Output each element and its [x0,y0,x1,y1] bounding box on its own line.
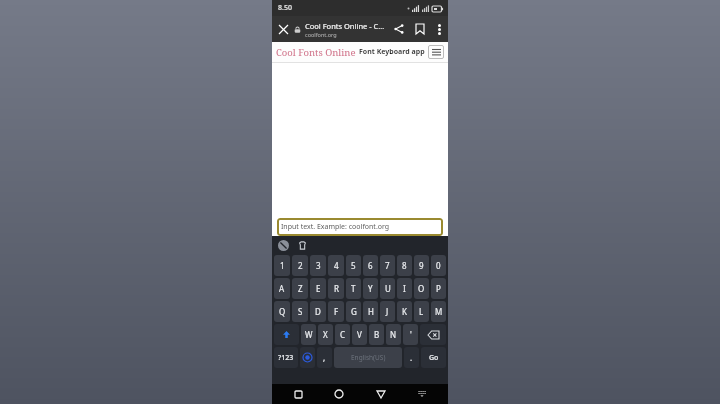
button[interactable]: K [397,301,412,322]
staticText: H [368,306,374,317]
staticText: P [436,283,441,294]
staticText: K [402,306,407,317]
staticText: G [351,306,357,317]
button[interactable]: 3 [310,255,326,276]
staticText: ' [410,329,412,340]
staticText: A [279,283,285,294]
button[interactable]: English(US) [334,347,402,368]
button[interactable]: P [431,278,446,299]
staticText: 6 [368,260,373,271]
button[interactable]: Share [388,16,410,42]
button[interactable]: H [363,301,378,322]
staticText: C [340,329,346,340]
staticText: 2 [298,260,303,271]
button[interactable]: 5 [346,255,361,276]
button[interactable]: Recent apps [283,384,313,404]
button[interactable]: Keyboard options [278,240,289,251]
button[interactable]: 0 [431,255,446,276]
button[interactable]: L [414,301,429,322]
button[interactable]: 4 [328,255,344,276]
staticText: J [386,306,389,317]
button[interactable]: J [380,301,395,322]
staticText: E [316,283,321,294]
button[interactable]: 2 [292,255,308,276]
button[interactable]: Input text. Example: coolfont.org [277,218,443,236]
button[interactable]: 6 [363,255,378,276]
staticText: , [323,352,326,363]
button[interactable]: A [274,278,290,299]
button[interactable]: Home [324,384,354,404]
button[interactable]: N [386,324,401,345]
button[interactable]: Hide keyboard [407,384,437,404]
staticText: Z [298,283,303,294]
button[interactable]: Themes [297,240,308,251]
button[interactable]: Key [274,347,298,368]
button[interactable]: X [318,324,333,345]
button[interactable]: 1 [274,255,290,276]
button[interactable]: Back [366,384,396,404]
staticText: U [385,283,391,294]
staticText: Y [368,283,373,294]
button[interactable]: Z [292,278,308,299]
button[interactable]: 7 [380,255,395,276]
button[interactable]: Y [363,278,378,299]
staticText: R [334,283,339,294]
staticText: 5 [351,260,356,271]
staticText: B [374,329,380,340]
button[interactable]: W [301,324,316,345]
staticText: I [403,283,406,294]
staticText: Cool Fonts Online - C… [305,21,385,31]
button[interactable]: Key [420,324,446,345]
button[interactable]: D [310,301,326,322]
staticText: D [315,306,321,317]
staticText: 0 [436,260,441,271]
staticText: X [323,329,328,340]
staticText: O [418,283,425,294]
staticText: 1 [280,260,285,271]
staticText: 8 [402,260,407,271]
staticText: 8.50 [278,3,292,13]
staticText: ?123 [278,353,294,363]
button[interactable]: ' [403,324,418,345]
button[interactable]: Menu [428,45,444,59]
button[interactable]: E [310,278,326,299]
staticText: Cool Fonts Online [276,46,356,59]
button[interactable]: V [352,324,367,345]
staticText: Input text. Example: coolfont.org [281,222,390,232]
staticText: 4 [334,260,339,271]
button[interactable]: O [414,278,429,299]
button[interactable]: M [431,301,446,322]
staticText: V [357,329,362,340]
staticText: 7 [385,260,390,271]
staticText: coolfont.org [305,31,337,38]
button[interactable]: More options [430,16,448,42]
button[interactable]: S [292,301,308,322]
button[interactable]: 9 [414,255,429,276]
staticText: 3 [316,260,321,271]
button[interactable]: R [328,278,344,299]
button[interactable]: Key [421,347,446,368]
staticText: N [390,329,397,340]
button[interactable]: Key [300,347,315,368]
button[interactable]: B [369,324,384,345]
button[interactable]: Cool Fonts Online - C… [305,21,388,38]
button[interactable]: Close [272,16,294,42]
button[interactable]: 8 [397,255,412,276]
button[interactable]: Bookmark [410,16,430,42]
button[interactable]: U [380,278,395,299]
button[interactable]: I [397,278,412,299]
button[interactable]: Key [317,347,332,368]
staticText: F [334,306,339,317]
staticText: 9 [419,260,424,271]
staticText: Go [429,353,439,363]
button[interactable]: Key [404,347,419,368]
staticText: L [419,306,424,317]
button[interactable]: G [346,301,361,322]
staticText: M [435,306,443,317]
button[interactable]: Q [274,301,290,322]
button[interactable]: F [328,301,344,322]
staticText: . [410,352,413,363]
button[interactable]: C [335,324,350,345]
button[interactable]: Key [274,324,299,345]
button[interactable]: T [346,278,361,299]
